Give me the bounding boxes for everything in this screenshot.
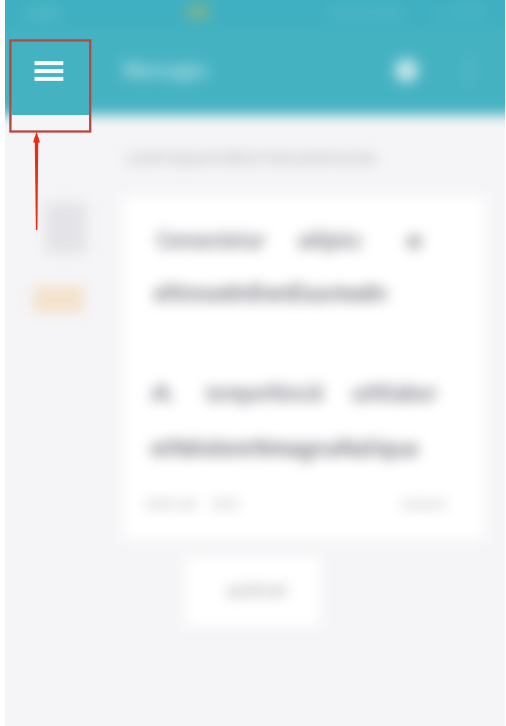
button[interactable]: Open navigation drawer — [10, 40, 90, 131]
